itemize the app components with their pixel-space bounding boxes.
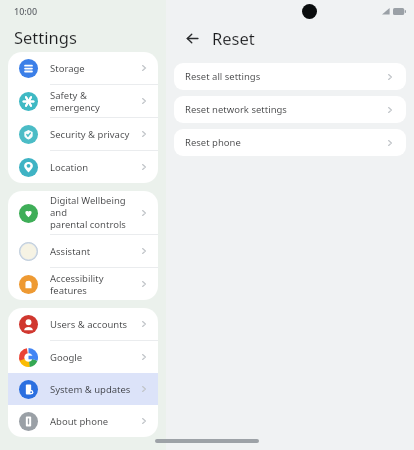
staticText: Accessibility features — [50, 272, 139, 297]
staticText: Users & accounts — [50, 318, 139, 331]
staticText: Reset phone — [185, 136, 385, 149]
button[interactable]: Google — [8, 341, 158, 373]
staticText: 10:00 — [14, 5, 38, 17]
button[interactable]: Reset all settings — [174, 63, 406, 90]
button[interactable]: Reset network settings — [174, 96, 406, 123]
staticText: Assistant — [50, 245, 139, 258]
staticText: Google — [50, 351, 139, 364]
button[interactable]: Users & accounts — [8, 308, 158, 340]
button[interactable]: Storage — [8, 52, 158, 84]
staticText: Settings — [14, 26, 77, 48]
button[interactable]: Location — [8, 151, 158, 183]
staticText: Safety & emergency — [50, 89, 139, 114]
staticText: Security & privacy — [50, 128, 139, 141]
button[interactable]: About phone — [8, 405, 158, 437]
staticText: Reset network settings — [185, 103, 385, 116]
staticText: Location — [50, 161, 139, 174]
button[interactable]: Back — [181, 27, 203, 49]
staticText: Digital Wellbeing and parental controls — [50, 194, 139, 231]
staticText: About phone — [50, 415, 139, 428]
staticText: Reset — [212, 27, 255, 49]
staticText: Storage — [50, 62, 139, 75]
button[interactable]: Safety & emergency — [8, 85, 158, 117]
button[interactable]: System & updates — [8, 373, 158, 405]
staticText: Reset all settings — [185, 70, 385, 83]
button[interactable]: Security & privacy — [8, 118, 158, 150]
staticText: System & updates — [50, 383, 139, 396]
button[interactable]: Accessibility features — [8, 268, 158, 300]
button[interactable]: Assistant — [8, 235, 158, 267]
button[interactable]: Reset phone — [174, 129, 406, 156]
button[interactable]: Digital Wellbeing and parental controls — [8, 191, 158, 234]
